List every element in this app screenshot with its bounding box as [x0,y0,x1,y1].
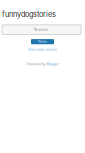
button[interactable]: View web version [28,47,57,52]
button[interactable]: Home [31,39,54,44]
button[interactable]: Blogger [47,62,59,66]
staticText: funnydogstories [2,10,56,19]
staticText: Blogger [47,62,59,66]
staticText: Powered by [26,62,45,66]
staticText: View web version [28,47,57,52]
staticText: No posts. [34,28,49,32]
staticText: Home [38,40,47,43]
